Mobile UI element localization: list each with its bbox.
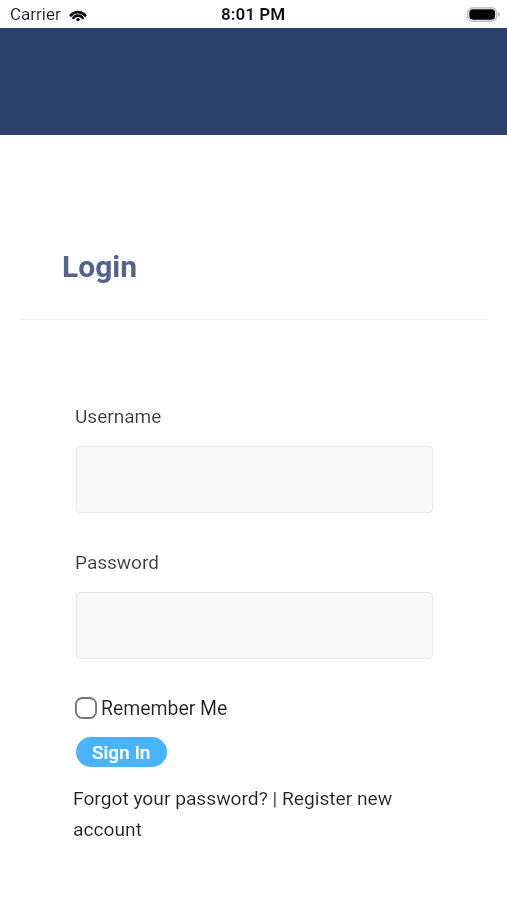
staticText: Remember Me bbox=[101, 697, 228, 720]
staticText: Forgot your password? | Register new acc… bbox=[73, 787, 403, 840]
other: Battery bbox=[467, 7, 501, 22]
other: Wi-Fi bbox=[68, 7, 88, 21]
button[interactable]: Register new account bbox=[277, 788, 401, 812]
staticText: Carrier bbox=[10, 4, 61, 24]
button[interactable]: Remember Me bbox=[75, 695, 228, 721]
staticText: 8:01 PM bbox=[221, 4, 286, 24]
staticText: Login bbox=[62, 249, 138, 284]
button[interactable]: Sign In bbox=[76, 737, 167, 767]
staticText: Username bbox=[75, 405, 162, 427]
staticText: Sign In bbox=[92, 741, 151, 763]
staticText: Password bbox=[75, 551, 159, 573]
button[interactable]: Forgot your password? bbox=[73, 788, 269, 812]
